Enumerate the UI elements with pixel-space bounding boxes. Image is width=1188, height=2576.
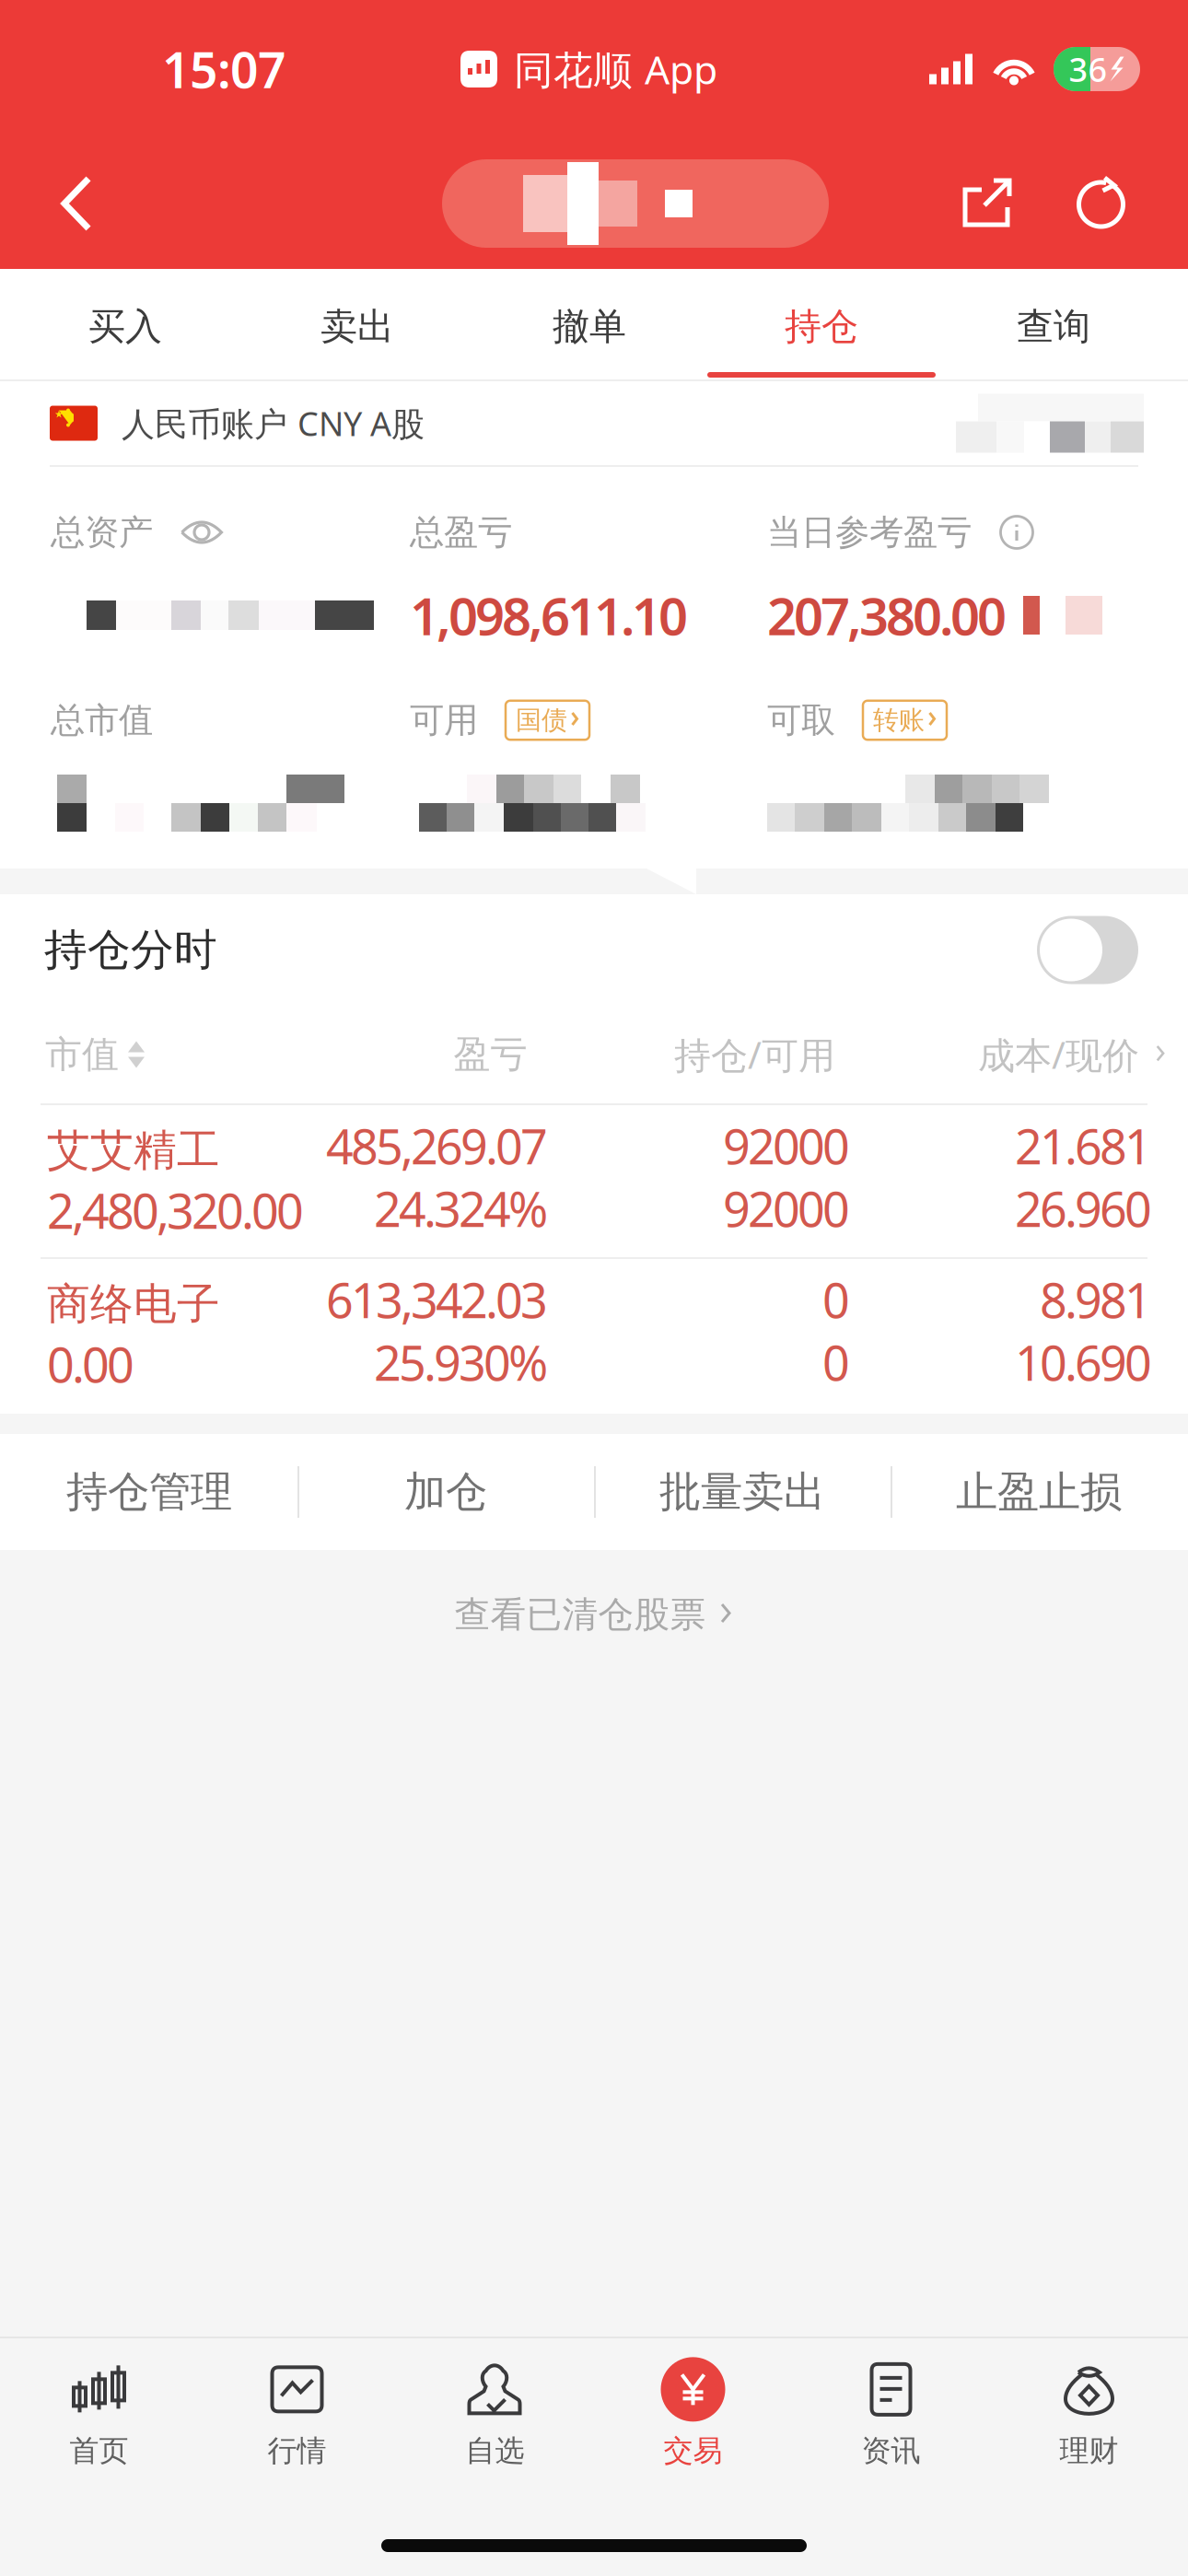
button[interactable]: 返回 [0,138,153,269]
staticText: 1,098,611.10 [410,581,688,649]
button[interactable]: 资讯 [792,2351,990,2480]
button[interactable]: 自选 [396,2351,594,2480]
staticText: 485,269.07 [326,1114,548,1178]
staticText: 当日参考盈亏 [767,511,972,554]
staticText: 资讯 [862,2433,920,2469]
staticText: 艾艾精工 [47,1124,220,1177]
button[interactable]: 交易 [594,2351,792,2480]
staticText: 同花顺 App [514,43,717,95]
staticText: 10.690 [1015,1330,1152,1394]
staticText: 商络电子 [47,1278,220,1330]
staticText: 止盈止损 [956,1466,1122,1518]
staticText: 25.930% [374,1330,548,1394]
button[interactable]: 查看已清仓股票 [0,1550,1188,1679]
button[interactable]: 止盈止损 [891,1434,1187,1550]
staticText: 2,480,320.00 [47,1178,304,1242]
staticText: 总市值 [51,699,153,741]
staticText: 卖出 [320,304,394,349]
staticText: 24.324% [374,1177,548,1240]
button[interactable]: 行情 [198,2351,396,2480]
button[interactable]: 卖出 [241,269,473,379]
button[interactable]: 持仓 [705,269,938,379]
staticText: 买入 [88,304,162,349]
staticText: 可取 [767,699,835,741]
staticText: 国债 [516,704,567,736]
button[interactable]: 撤单 [473,269,705,379]
staticText: 持仓管理 [66,1466,232,1518]
staticText: 盈亏 [453,1032,527,1077]
staticText: 92000 [723,1114,850,1178]
staticText: 8.981 [1040,1268,1152,1331]
staticText: 首页 [70,2433,128,2469]
staticText: 0.00 [47,1332,134,1396]
staticText: 15:07 [162,36,286,102]
staticText: 成本/现价 [978,1030,1139,1079]
staticText: 持仓分时 [44,924,217,976]
button[interactable]: 买入 [9,269,241,379]
staticText: 行情 [268,2433,326,2469]
staticText: 613,342.03 [326,1268,548,1331]
staticText: 21.681 [1015,1114,1152,1178]
button[interactable]: 商络电子 [0,1259,1188,1414]
staticText: 92000 [723,1177,850,1240]
staticText: 总盈亏 [410,511,512,554]
staticText: 自选 [466,2433,524,2469]
staticText: 转账 [873,704,925,736]
staticText: 加仓 [404,1466,487,1518]
staticText: 持仓 [785,304,858,349]
button[interactable]: 查询 [938,269,1170,379]
staticText: 26.960 [1015,1177,1152,1240]
button[interactable]: 批量卖出 [594,1434,891,1550]
staticText: 市值 [45,1032,119,1077]
staticText: 交易 [664,2433,722,2469]
staticText: 0 [822,1330,850,1394]
staticText: 理财 [1060,2433,1118,2469]
staticText: 批量卖出 [659,1466,825,1518]
button[interactable]: 持仓分时 [1037,916,1138,984]
button[interactable]: 持仓管理 [1,1434,297,1550]
staticText: 撤单 [553,304,626,349]
staticText: 36 [1069,47,1107,91]
button[interactable]: 加仓 [297,1434,594,1550]
staticText: 查看已清仓股票 [454,1593,706,1636]
button[interactable]: 首页 [0,2351,198,2480]
button[interactable]: 分享 [930,146,1044,262]
staticText: 总资产 [51,511,153,554]
button[interactable]: 艾艾精工 [0,1105,1188,1257]
staticText: 0 [822,1268,850,1331]
button[interactable]: 理财 [990,2351,1188,2480]
staticText: 可用 [410,699,478,741]
staticText: 207,380.00 [767,581,1007,649]
staticText: 人民币账户 CNY A股 [122,401,425,445]
staticText: 查询 [1017,304,1090,349]
button[interactable]: 刷新 [1044,146,1159,262]
staticText: 持仓/可用 [674,1030,835,1079]
